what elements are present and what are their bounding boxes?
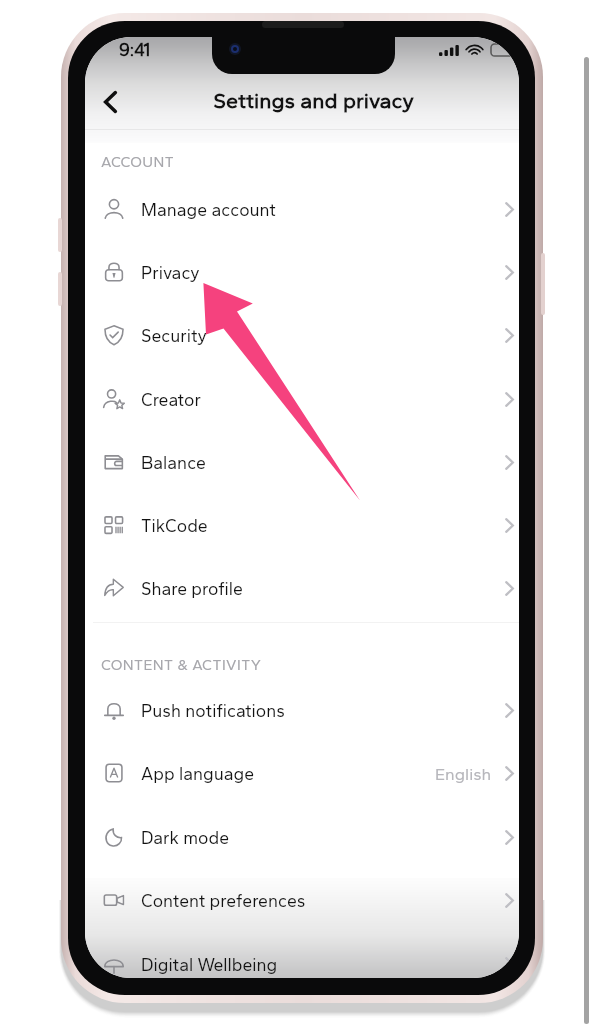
staticText: Content preferences xyxy=(141,890,306,911)
staticText: Security xyxy=(141,325,207,346)
staticText: TikCode xyxy=(141,515,208,536)
staticText: Manage account xyxy=(141,199,276,220)
button[interactable]: Security xyxy=(85,302,519,365)
button[interactable]: App language xyxy=(85,740,519,803)
staticText: Dark mode xyxy=(141,827,230,848)
button[interactable]: Dark mode xyxy=(85,804,519,867)
staticText: Settings and privacy xyxy=(213,88,414,114)
button[interactable]: Push notifications xyxy=(85,677,519,740)
button[interactable]: Privacy xyxy=(85,239,519,302)
button[interactable]: Content preferences xyxy=(85,867,519,930)
staticText: Digital Wellbeing xyxy=(141,954,278,975)
staticText: CONTENT & ACTIVITY xyxy=(101,656,262,672)
button[interactable]: Manage account xyxy=(85,176,519,239)
button[interactable]: Creator xyxy=(85,366,519,429)
staticText: Creator xyxy=(141,389,201,410)
staticText: ACCOUNT xyxy=(101,153,175,169)
button[interactable]: Digital Wellbeing xyxy=(85,931,519,978)
staticText: 9:41 xyxy=(119,39,151,60)
button[interactable]: Back xyxy=(88,80,132,124)
button[interactable]: Share profile xyxy=(85,555,519,618)
staticText: Push notifications xyxy=(141,700,285,721)
staticText: App language xyxy=(141,763,255,784)
staticText: Balance xyxy=(141,452,206,473)
staticText: Share profile xyxy=(141,578,243,599)
staticText: English xyxy=(435,764,492,784)
button[interactable]: Balance xyxy=(85,429,519,492)
button[interactable]: TikCode xyxy=(85,492,519,555)
staticText: Privacy xyxy=(141,262,200,283)
